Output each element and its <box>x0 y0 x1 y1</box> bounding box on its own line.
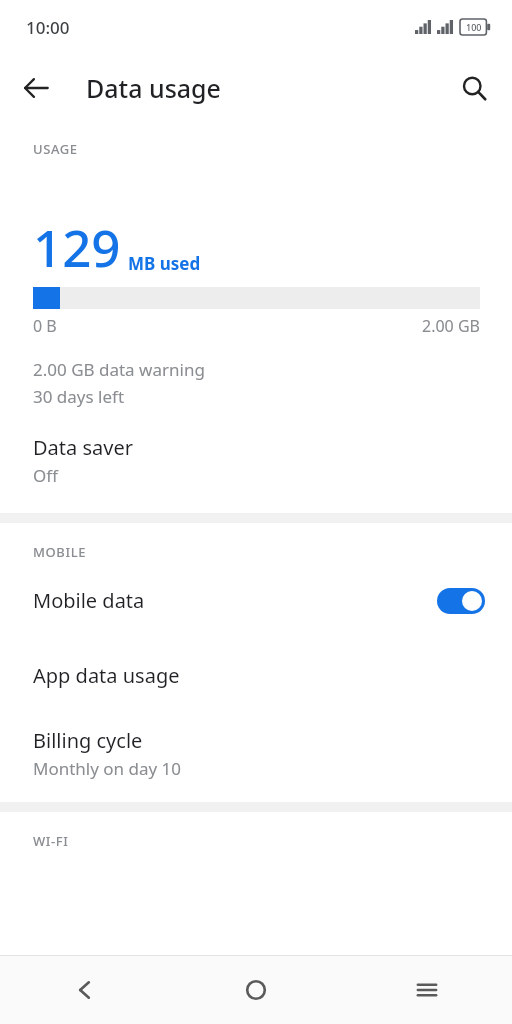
button[interactable]: Back <box>0 956 170 1024</box>
staticText: 129 <box>33 212 121 281</box>
staticText: 2.00 GB <box>422 315 480 337</box>
staticText: Data saver <box>33 434 133 461</box>
staticText: 100 <box>466 21 482 33</box>
staticText: MOBILE <box>33 543 87 561</box>
button[interactable]: Recent apps <box>341 956 512 1024</box>
staticText: Off <box>33 464 58 487</box>
button[interactable]: Search <box>450 64 498 112</box>
staticText: MB used <box>128 252 201 275</box>
staticText: Mobile data <box>33 587 145 614</box>
staticText: 2.00 GB data warning <box>33 358 205 381</box>
staticText: Billing cycle <box>33 727 143 754</box>
button[interactable]: Back <box>12 64 60 112</box>
staticText: App data usage <box>33 662 180 689</box>
staticText: 0 B <box>33 315 57 337</box>
button[interactable]: Home <box>170 956 341 1024</box>
staticText: 30 days left <box>33 385 125 408</box>
button[interactable]: Billing cycle <box>0 711 512 802</box>
button[interactable]: Data saver <box>0 408 512 513</box>
staticText: Monthly on day 10 <box>33 757 182 780</box>
button[interactable]: App data usage <box>0 640 512 711</box>
staticText: WI-FI <box>33 832 69 850</box>
staticText: USAGE <box>33 140 78 158</box>
button[interactable]: Mobile data <box>0 561 512 640</box>
staticText: 10:00 <box>26 16 70 39</box>
staticText: Data usage <box>86 71 221 105</box>
